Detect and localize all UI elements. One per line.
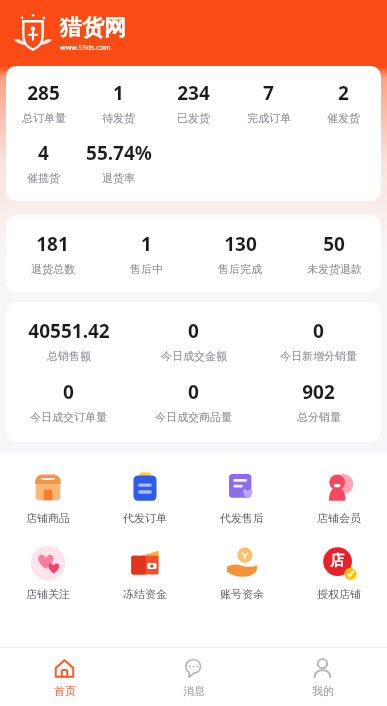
staticText: 0	[188, 318, 199, 344]
button[interactable]: 账号资余	[194, 541, 290, 605]
button[interactable]: 0	[256, 316, 381, 365]
button[interactable]: 0	[131, 316, 256, 365]
staticText: 店铺关注	[26, 587, 70, 601]
staticText: 4	[38, 140, 49, 166]
button[interactable]: 0	[6, 377, 131, 426]
button[interactable]: 234	[156, 78, 231, 127]
staticText: 已发货	[177, 111, 210, 125]
staticText: 猎货网	[60, 14, 126, 42]
button[interactable]: 1	[81, 78, 156, 127]
staticText: 退货率	[102, 171, 135, 185]
staticText: 1	[141, 231, 152, 257]
button[interactable]: 285	[6, 78, 81, 127]
staticText: 234	[177, 80, 210, 106]
staticText: 店	[330, 552, 344, 570]
button[interactable]: 店铺关注	[0, 541, 96, 605]
staticText: 店铺会员	[317, 511, 361, 525]
staticText: 催发货	[327, 111, 360, 125]
button[interactable]: 130	[193, 229, 287, 278]
staticText: 40551.42	[28, 318, 110, 344]
button[interactable]: 猎货网 logo	[12, 12, 126, 54]
staticText: 0	[63, 379, 74, 405]
button[interactable]: 首页	[0, 648, 129, 706]
staticText: 181	[36, 231, 69, 257]
staticText: www.59ds.com	[60, 43, 111, 53]
staticText: 今日成交商品量	[155, 410, 232, 424]
button[interactable]: 4	[6, 138, 81, 187]
button[interactable]: 7	[231, 78, 306, 127]
button[interactable]: 消息	[129, 648, 258, 706]
staticText: 130	[224, 231, 257, 257]
staticText: 代发订单	[123, 511, 167, 525]
button[interactable]: 902	[256, 377, 381, 426]
button[interactable]: 代发售后	[194, 465, 290, 529]
staticText: 消息	[183, 684, 205, 698]
staticText: 授权店铺	[317, 587, 361, 601]
staticText: 50	[323, 231, 345, 257]
staticText: 账号资余	[220, 587, 264, 601]
button[interactable]: 代发订单	[97, 465, 193, 529]
staticText: 55.74%	[86, 140, 152, 166]
staticText: 店铺商品	[26, 511, 70, 525]
staticText: 代发售后	[220, 511, 264, 525]
staticText: 未发货退款	[307, 262, 362, 276]
button[interactable]: 40551.42	[6, 316, 131, 365]
staticText: 902	[302, 379, 335, 405]
staticText: 今日新增分销量	[280, 349, 357, 363]
staticText: 催揽货	[27, 171, 60, 185]
staticText: 完成订单	[247, 111, 291, 125]
button[interactable]: 店铺商品	[0, 465, 96, 529]
staticText: 退货总数	[31, 262, 75, 276]
staticText: 售后中	[130, 262, 163, 276]
staticText: 285	[27, 80, 60, 106]
staticText: 售后完成	[218, 262, 262, 276]
staticText: 我的	[312, 684, 334, 698]
button[interactable]: 店铺会员	[291, 465, 387, 529]
staticText: 1	[113, 80, 124, 106]
staticText: 首页	[54, 684, 76, 698]
button[interactable]: 181	[6, 229, 99, 278]
staticText: 总订单量	[22, 111, 66, 125]
button[interactable]: 50	[287, 229, 381, 278]
staticText: 今日成交订单量	[30, 410, 107, 424]
staticText: 总销售额	[47, 349, 91, 363]
button[interactable]: 0	[131, 377, 256, 426]
staticText: 冻结资金	[123, 587, 167, 601]
staticText: 0	[313, 318, 324, 344]
staticText: 0	[188, 379, 199, 405]
staticText: 7	[263, 80, 274, 106]
button[interactable]: 2	[306, 78, 381, 127]
button[interactable]: 冻结资金	[97, 541, 193, 605]
button[interactable]: 55.74%	[81, 138, 156, 187]
button[interactable]: 我的	[258, 648, 387, 706]
button[interactable]: 1	[99, 229, 193, 278]
staticText: 今日成交金额	[161, 349, 227, 363]
staticText: 2	[338, 80, 349, 106]
button[interactable]: 店	[291, 541, 387, 605]
staticText: 待发货	[102, 111, 135, 125]
staticText: 总分销量	[297, 410, 341, 424]
